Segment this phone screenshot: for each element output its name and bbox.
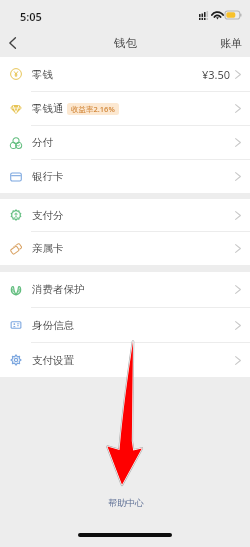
button[interactable]: 分付 [0,126,250,159]
staticText: 身份信息 [32,319,74,332]
staticText: 消费者保护 [32,283,85,296]
staticText: 收益率2.16% [71,104,115,114]
button[interactable]: 身份信息 [0,308,250,342]
staticText: 零钱 [32,68,53,81]
staticText: 支付分 [32,209,64,222]
button[interactable]: 帮助中心 [105,495,147,510]
button[interactable]: 银行卡 [0,160,250,193]
button[interactable]: Back [0,31,24,55]
staticText: ¥3.50 [202,67,231,82]
button[interactable]: 账单 [212,32,250,54]
button[interactable]: 亲属卡 [0,232,250,265]
staticText: 支付设置 [32,354,74,367]
staticText: 零钱通 [32,102,64,115]
staticText: 5:05 [20,9,42,24]
button[interactable]: 零钱 [0,57,250,91]
staticText: 银行卡 [32,170,64,183]
staticText: 钱包 [114,36,137,50]
staticText: 账单 [220,36,242,50]
button[interactable]: 消费者保护 [0,272,250,307]
staticText: 分付 [32,136,53,149]
staticText: 帮助中心 [108,497,144,508]
staticText: 亲属卡 [32,242,64,255]
button[interactable]: 零钱通 [0,92,250,125]
button[interactable]: 支付分 [0,199,250,231]
button[interactable]: 支付设置 [0,343,250,377]
